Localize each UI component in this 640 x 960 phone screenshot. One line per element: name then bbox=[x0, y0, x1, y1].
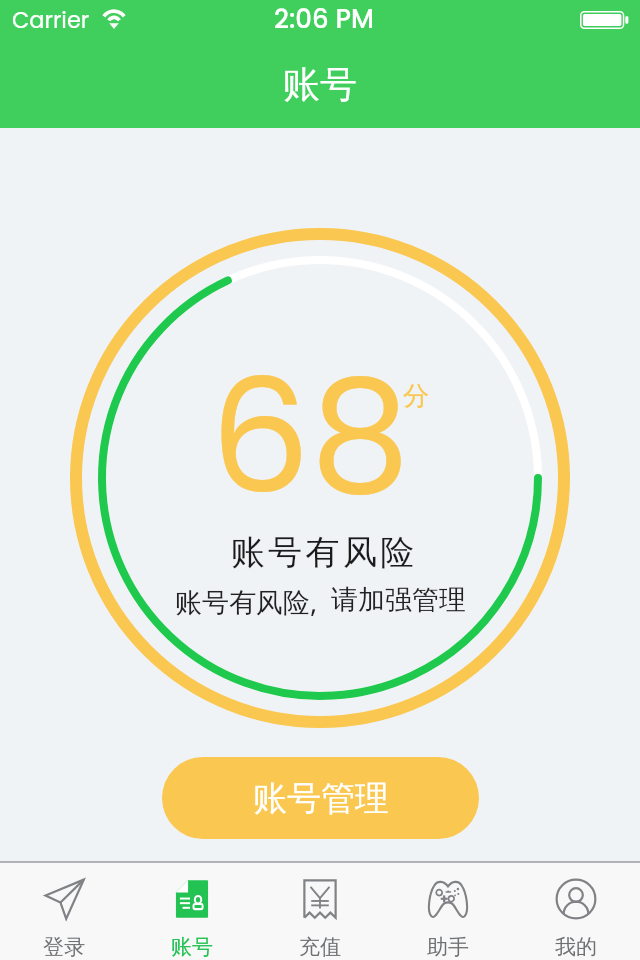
button[interactable]: 充值 Recharge bbox=[256, 863, 384, 960]
staticText: 2:06 PM bbox=[274, 1, 374, 37]
staticText: 账号 bbox=[171, 934, 213, 960]
staticText: 68 bbox=[210, 326, 411, 547]
staticText: 充值 bbox=[299, 934, 341, 960]
button[interactable]: 账号管理 bbox=[162, 757, 479, 839]
staticText: 请加强管理 bbox=[331, 583, 466, 617]
staticText: 分 bbox=[403, 380, 429, 413]
staticText: 我的 bbox=[555, 934, 597, 960]
button[interactable]: 助手 Assistant bbox=[384, 863, 512, 960]
staticText: 助手 bbox=[427, 934, 469, 960]
button[interactable]: 登录 Login bbox=[0, 863, 128, 960]
staticText: Carrier bbox=[12, 4, 90, 35]
staticText: 账号有风险, bbox=[175, 583, 318, 620]
button[interactable]: 账号 Account bbox=[128, 863, 256, 960]
staticText: 账号管理 bbox=[253, 777, 389, 820]
staticText: 登录 bbox=[43, 934, 85, 960]
button[interactable]: 我的 Profile bbox=[512, 863, 640, 960]
staticText: 账号有风险 bbox=[229, 531, 416, 574]
staticText: 账号 bbox=[283, 61, 357, 108]
